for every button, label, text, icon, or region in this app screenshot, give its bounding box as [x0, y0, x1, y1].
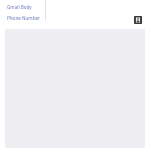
button[interactable]: Gmail Body — [7, 4, 32, 10]
button[interactable]: Pick contact — [133, 15, 143, 25]
button[interactable]: Phone Number — [7, 15, 40, 21]
